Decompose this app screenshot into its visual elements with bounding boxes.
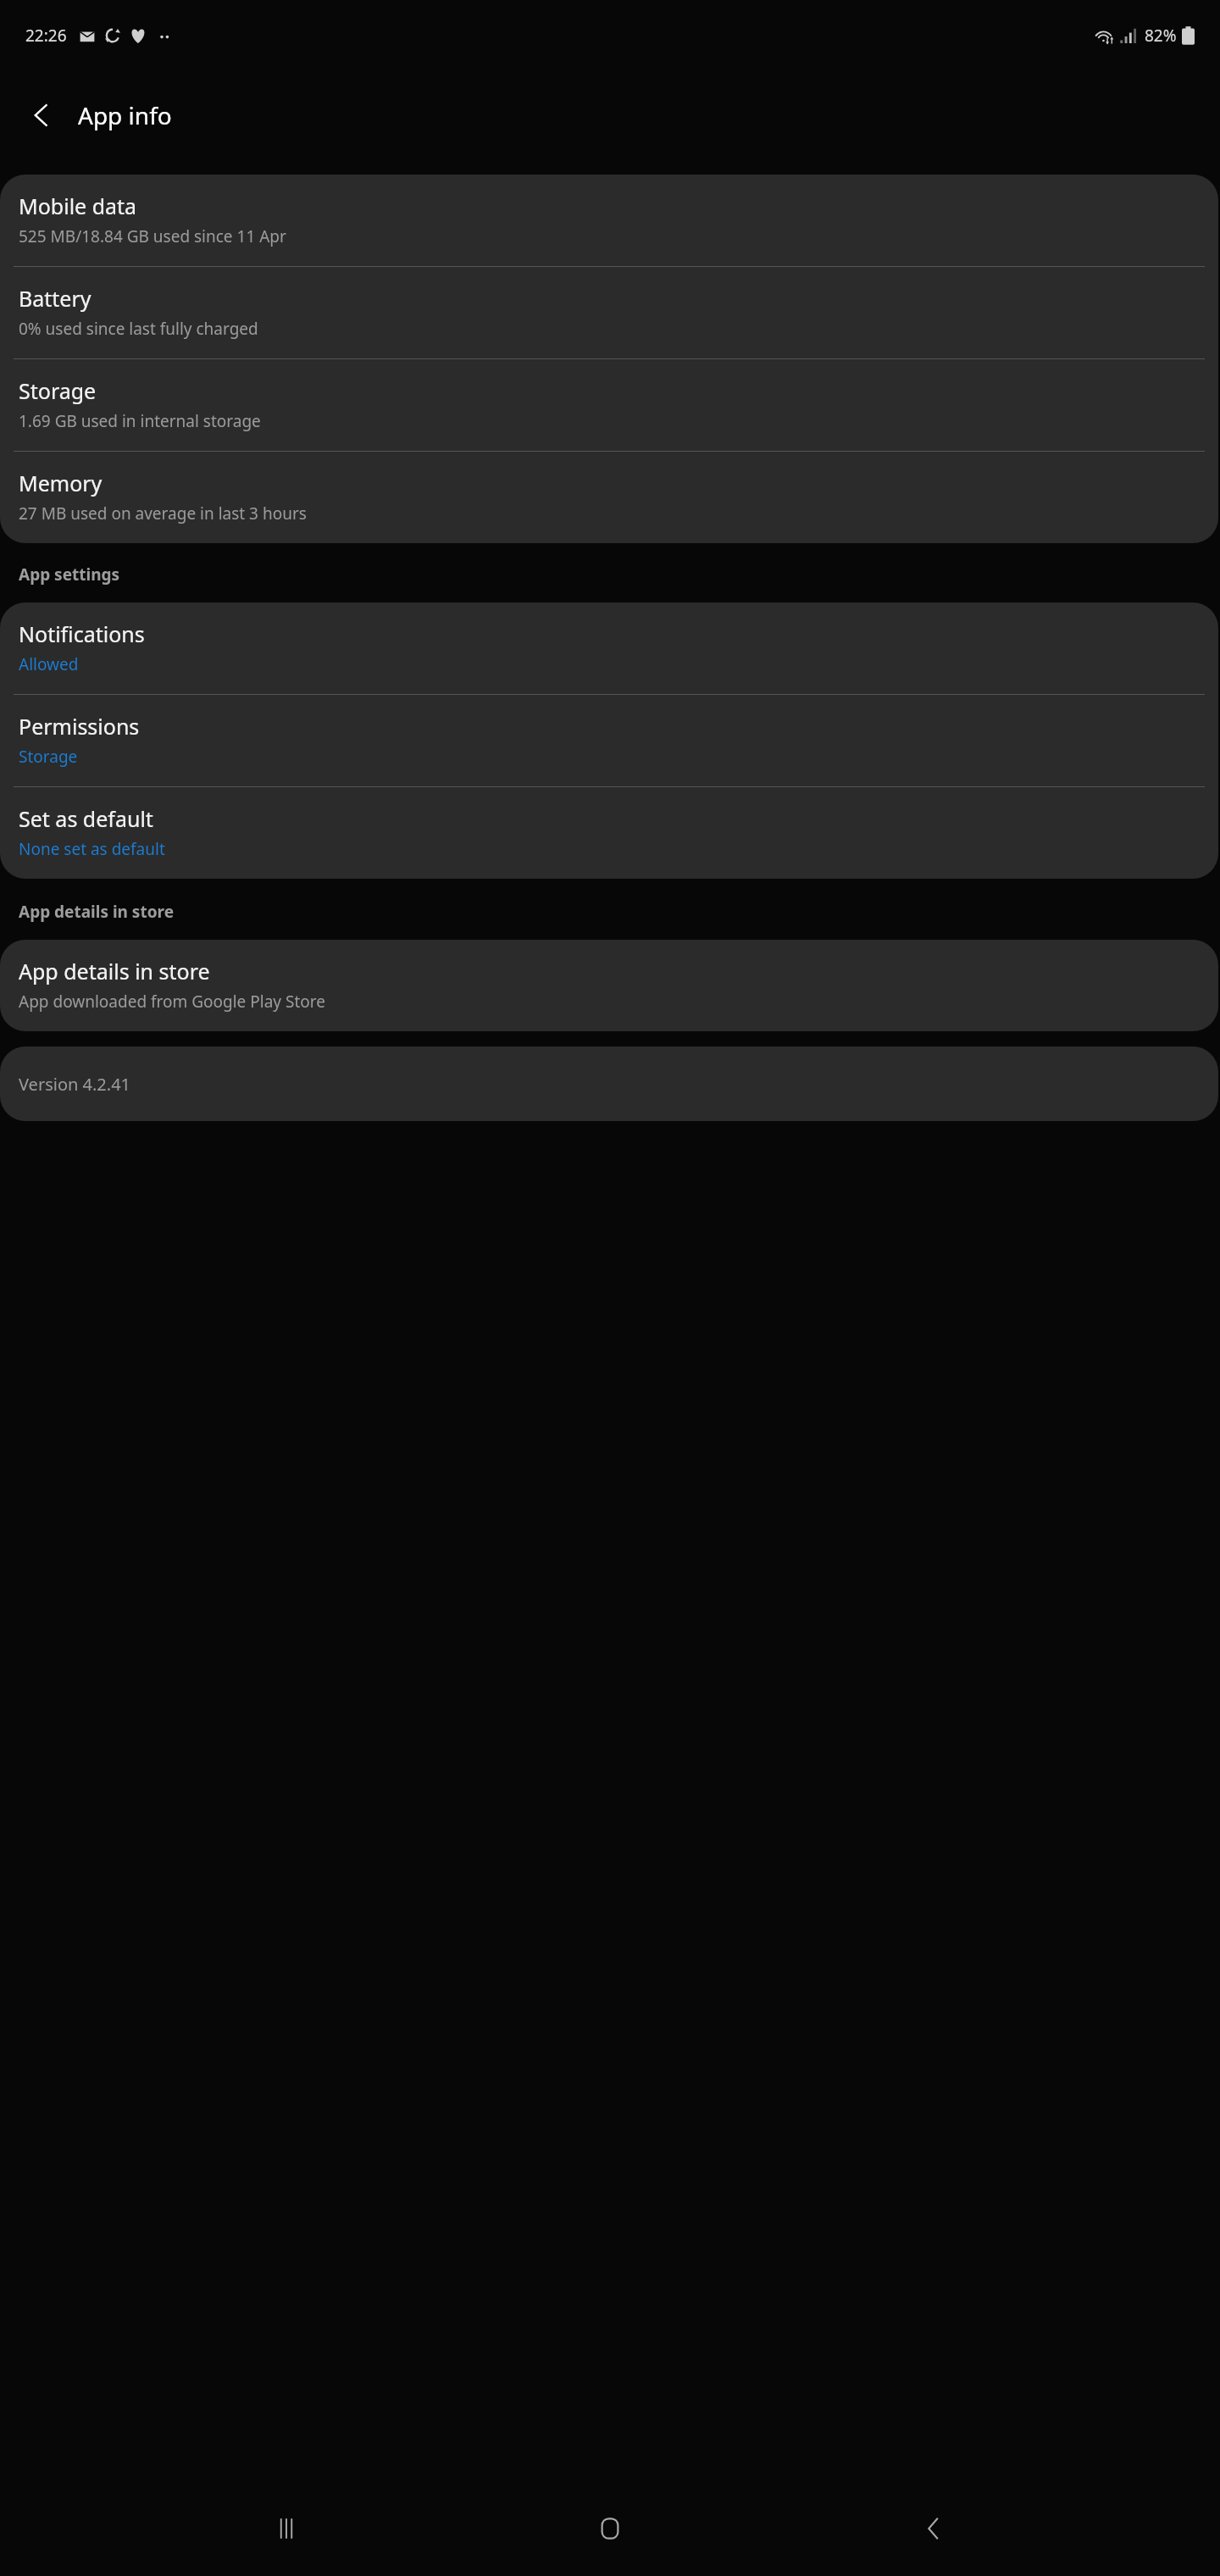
staticText: 22:26 [25,25,67,47]
button[interactable]: Set as default [0,787,1218,879]
staticText: Memory [19,469,103,497]
staticText: App settings [19,563,120,586]
staticText: Version 4.2.41 [19,1073,131,1096]
button[interactable]: Storage [0,359,1218,451]
button[interactable]: Memory [0,452,1218,543]
staticText: Permissions [19,712,140,741]
staticText: Battery [19,284,91,313]
staticText: 82% [1145,25,1177,47]
button[interactable]: Back [15,89,68,142]
staticText: 0% used since last fully charged [19,318,258,340]
button[interactable]: Version 4.2.41 [0,1046,1218,1121]
staticText: App downloaded from Google Play Store [19,991,325,1013]
staticText: 525 MB/18.84 GB used since 11 Apr [19,225,286,247]
button[interactable]: Battery [0,267,1218,358]
staticText: App details in store [19,901,174,923]
button[interactable]: App details in store [0,940,1218,1031]
staticText: Mobile data [19,192,137,220]
staticText: Storage [19,746,78,768]
staticText: Notifications [19,619,145,648]
button[interactable]: Notifications [0,602,1218,694]
staticText: 1.69 GB used in internal storage [19,410,261,432]
staticText: App details in store [19,957,210,985]
staticText: 27 MB used on average in last 3 hours [19,502,307,525]
button[interactable]: Home [573,2491,647,2566]
button[interactable]: Mobile data [0,175,1218,266]
button[interactable]: Permissions [0,695,1218,786]
staticText: Set as default [19,804,153,833]
button[interactable]: Recent apps [249,2491,324,2566]
staticText: App info [78,99,172,131]
staticText: Allowed [19,653,79,675]
staticText: Storage [19,376,97,405]
button[interactable]: Back [896,2491,971,2566]
staticText: None set as default [19,838,165,860]
